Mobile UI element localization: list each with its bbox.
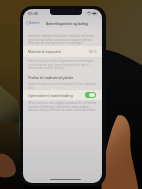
button[interactable]: Optimalisert batterilading: [85, 92, 96, 98]
staticText: 88 %: [89, 49, 97, 54]
button[interactable]: Maksimal kapasitet: [23, 46, 102, 57]
staticText: Maksimal kapasitet: [28, 49, 62, 54]
staticText: Systemet ytelsen stottes fra batteriet t…: [28, 82, 97, 89]
staticText: Batteri: [29, 20, 40, 25]
staticText: Batterikapasitet og lading: [46, 21, 88, 25]
staticText: 09:45: [28, 11, 39, 16]
staticText: Dette er et mal pa batterikapasiteten sa…: [28, 59, 97, 69]
staticText: Optimalisert batterilading: [28, 93, 73, 98]
staticText: iPhone laerer av dine daglige ladevaner …: [28, 101, 97, 111]
button[interactable]: Batteri: [23, 19, 42, 26]
staticText: Ytelse til maksimal ytelse: [28, 75, 74, 80]
staticText: Batteriets maksimale kapasitet reduseres…: [28, 34, 97, 44]
button[interactable]: Optimalisert batterilading: [23, 90, 102, 100]
